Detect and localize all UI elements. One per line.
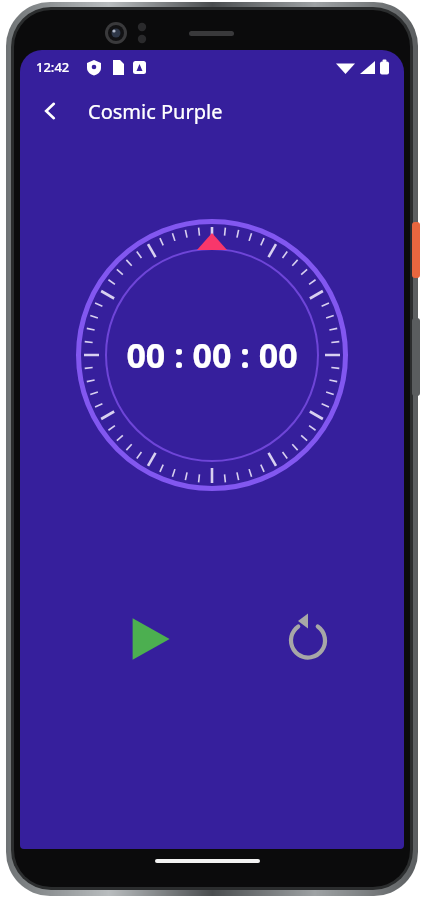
staticText: 00 : 00 : 00	[126, 332, 298, 378]
button[interactable]: Reset	[276, 607, 340, 671]
staticText: 12:42	[36, 58, 70, 76]
button[interactable]: Back	[26, 87, 74, 135]
staticText: Cosmic Purple	[88, 98, 223, 125]
button[interactable]: Start	[116, 607, 180, 671]
